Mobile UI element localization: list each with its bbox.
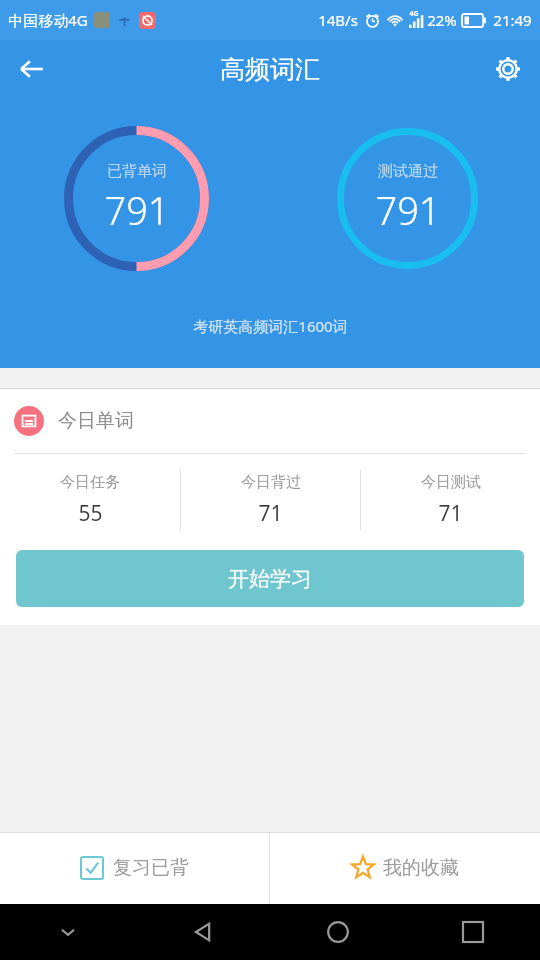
staticText: 今日测试 <box>421 473 481 492</box>
staticText: 高频词汇 <box>220 54 320 85</box>
button[interactable]: 返回 <box>8 45 56 93</box>
button[interactable]: 复习已背 <box>0 832 269 904</box>
staticText: 4G <box>409 9 419 19</box>
button[interactable]: 开始学习 <box>16 550 524 607</box>
button[interactable]: 设置 <box>484 45 532 93</box>
button[interactable]: 今日任务 <box>0 454 180 546</box>
staticText: 71 <box>438 499 463 528</box>
staticText: 21:49 <box>493 10 532 30</box>
staticText: 今日单词 <box>58 409 134 433</box>
staticText: 今日任务 <box>60 473 120 492</box>
button[interactable]: 今日单词 <box>0 389 540 453</box>
staticText: 791 <box>375 184 441 236</box>
staticText: 791 <box>104 184 170 236</box>
button[interactable]: 今日背过 <box>181 454 360 546</box>
button[interactable]: 今日测试 <box>361 454 540 546</box>
staticText: 测试通过 <box>378 162 438 181</box>
staticText: 复习已背 <box>113 856 189 880</box>
staticText: 开始学习 <box>228 566 312 592</box>
staticText: 我的收藏 <box>383 856 459 880</box>
staticText: 71 <box>258 499 283 528</box>
staticText: 中国移动4G <box>8 10 88 30</box>
staticText: 考研英高频词汇1600词 <box>193 316 348 336</box>
staticText: 今日背过 <box>241 473 301 492</box>
button[interactable]: 我的收藏 <box>270 832 540 904</box>
staticText: 14B/s <box>318 10 358 30</box>
staticText: 22% <box>427 10 457 30</box>
staticText: 55 <box>78 499 103 528</box>
staticText: 已背单词 <box>107 162 167 181</box>
